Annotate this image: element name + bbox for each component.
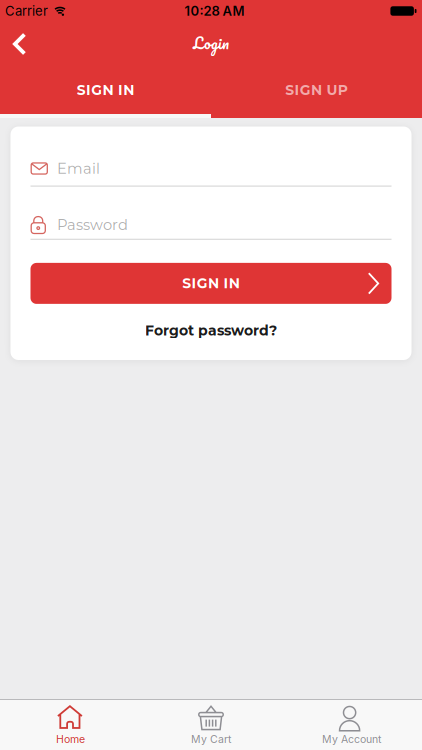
staticText: My Account bbox=[322, 733, 381, 746]
staticText: Home bbox=[56, 733, 85, 746]
staticText: Carrier bbox=[5, 3, 48, 19]
staticText: Forgot password? bbox=[145, 322, 277, 339]
staticText: Email bbox=[57, 160, 100, 177]
staticText: My Cart bbox=[191, 733, 231, 746]
staticText: 10:28 AM bbox=[184, 3, 244, 19]
staticText: Login bbox=[193, 30, 229, 56]
button[interactable]: Forgot password? bbox=[145, 319, 277, 341]
button[interactable]: My Cart bbox=[141, 700, 281, 750]
button[interactable]: SIGN UP bbox=[211, 66, 422, 118]
button[interactable]: Home bbox=[0, 700, 141, 750]
button[interactable]: SIGN IN bbox=[0, 66, 211, 118]
button[interactable]: Back bbox=[0, 22, 38, 66]
button[interactable]: My Account bbox=[281, 700, 422, 750]
staticText: SIGN IN bbox=[182, 275, 240, 292]
button[interactable]: SIGN IN bbox=[30, 263, 391, 304]
staticText: SIGN IN bbox=[77, 81, 134, 98]
staticText: Password bbox=[57, 216, 128, 234]
staticText: SIGN UP bbox=[285, 81, 348, 98]
